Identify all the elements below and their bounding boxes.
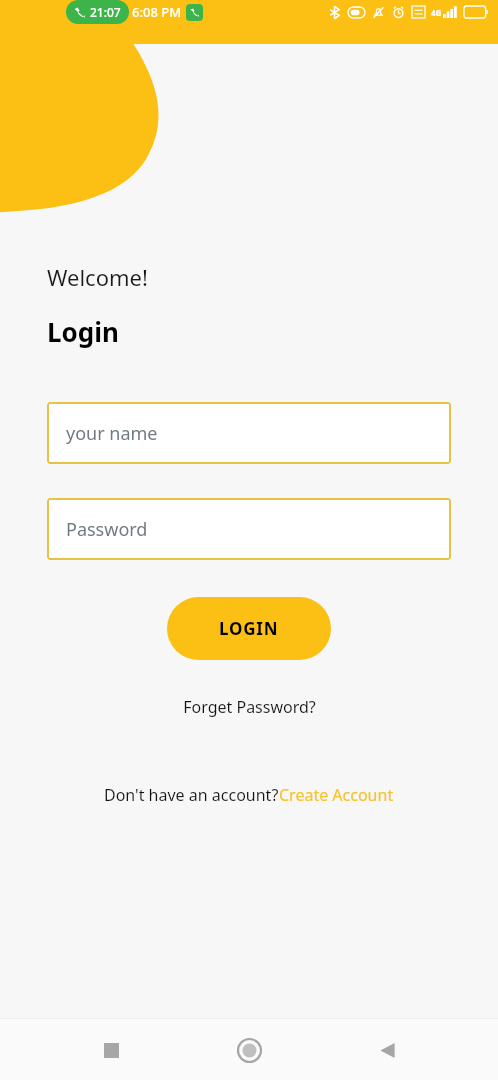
button[interactable]: your name: [47, 402, 451, 464]
staticText: Don't have an account?: [104, 784, 279, 806]
staticText: Login: [47, 314, 119, 349]
button[interactable]: Password: [47, 498, 451, 560]
staticText: 6:08 PM: [132, 3, 182, 21]
staticText: your name: [66, 421, 158, 446]
staticText: LOGIN: [219, 617, 279, 640]
staticText: Password: [66, 517, 148, 542]
button[interactable]: Forget Password?: [175, 692, 324, 722]
staticText: Forget Password?: [183, 696, 316, 718]
button[interactable]: Recent apps: [84, 1023, 138, 1077]
staticText: 21:07: [90, 4, 121, 20]
staticText: Welcome!: [47, 262, 148, 292]
button[interactable]: Home: [222, 1023, 276, 1077]
staticText: Create Account: [279, 784, 394, 806]
button[interactable]: Back: [360, 1023, 414, 1077]
staticText: 4G: [431, 7, 442, 18]
staticText: 30: [470, 7, 480, 18]
button[interactable]: Create Account: [279, 784, 394, 806]
button[interactable]: LOGIN: [167, 597, 331, 660]
